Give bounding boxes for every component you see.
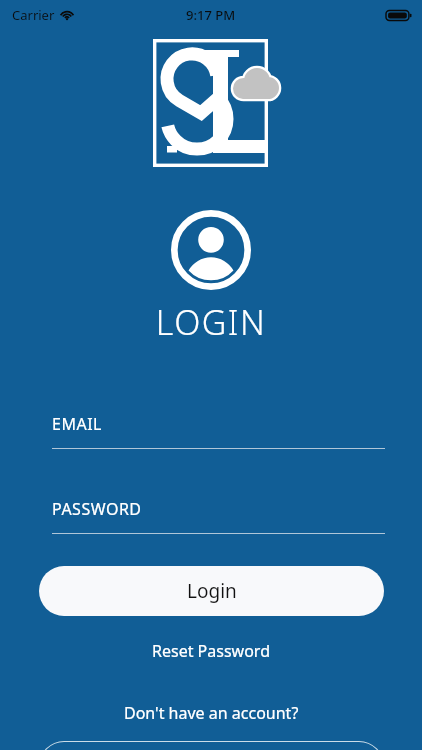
button[interactable]: Sign Up (39, 741, 384, 750)
staticText: Carrier (12, 6, 55, 24)
staticText: PASSWORD (52, 498, 142, 520)
staticText: 9:17 PM (186, 6, 236, 24)
button[interactable]: Reset Password (138, 636, 284, 666)
staticText: Login (187, 578, 237, 604)
button[interactable]: Don't have an account? (110, 698, 313, 728)
staticText: Don't have an account? (124, 702, 299, 724)
staticText: LOGIN (0, 299, 422, 345)
button[interactable]: Login (39, 566, 384, 616)
other: SL logo (145, 31, 285, 176)
staticText: EMAIL (52, 413, 102, 435)
button[interactable]: PASSWORD (52, 498, 385, 534)
staticText: Reset Password (152, 640, 270, 662)
other: User avatar (171, 210, 251, 290)
button[interactable]: EMAIL (52, 413, 385, 449)
